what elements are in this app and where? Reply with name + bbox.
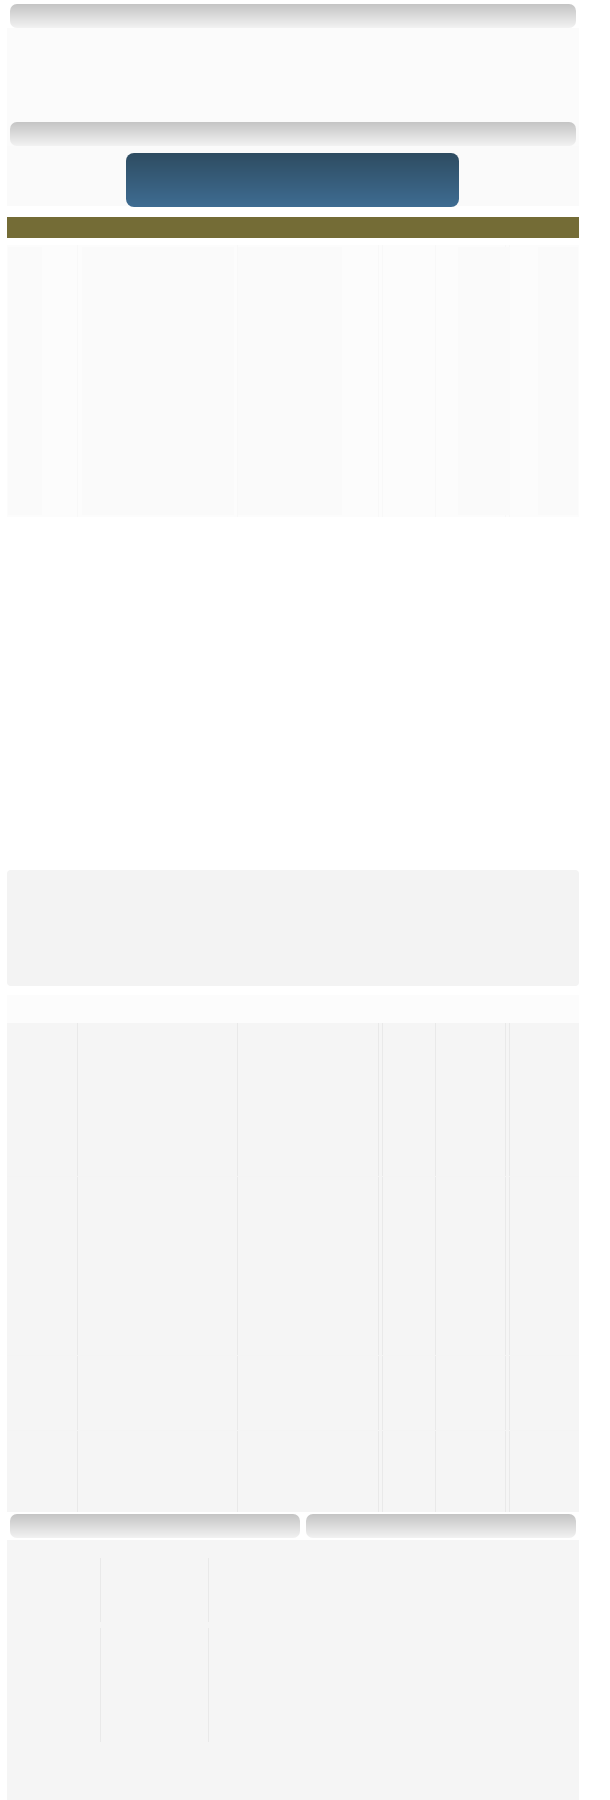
button[interactable]: Previous [10,1514,300,1538]
button[interactable]: Search [10,4,576,28]
button[interactable]: Primary action [126,153,459,207]
button[interactable]: Menu [10,122,576,146]
button[interactable]: Next [306,1514,576,1538]
